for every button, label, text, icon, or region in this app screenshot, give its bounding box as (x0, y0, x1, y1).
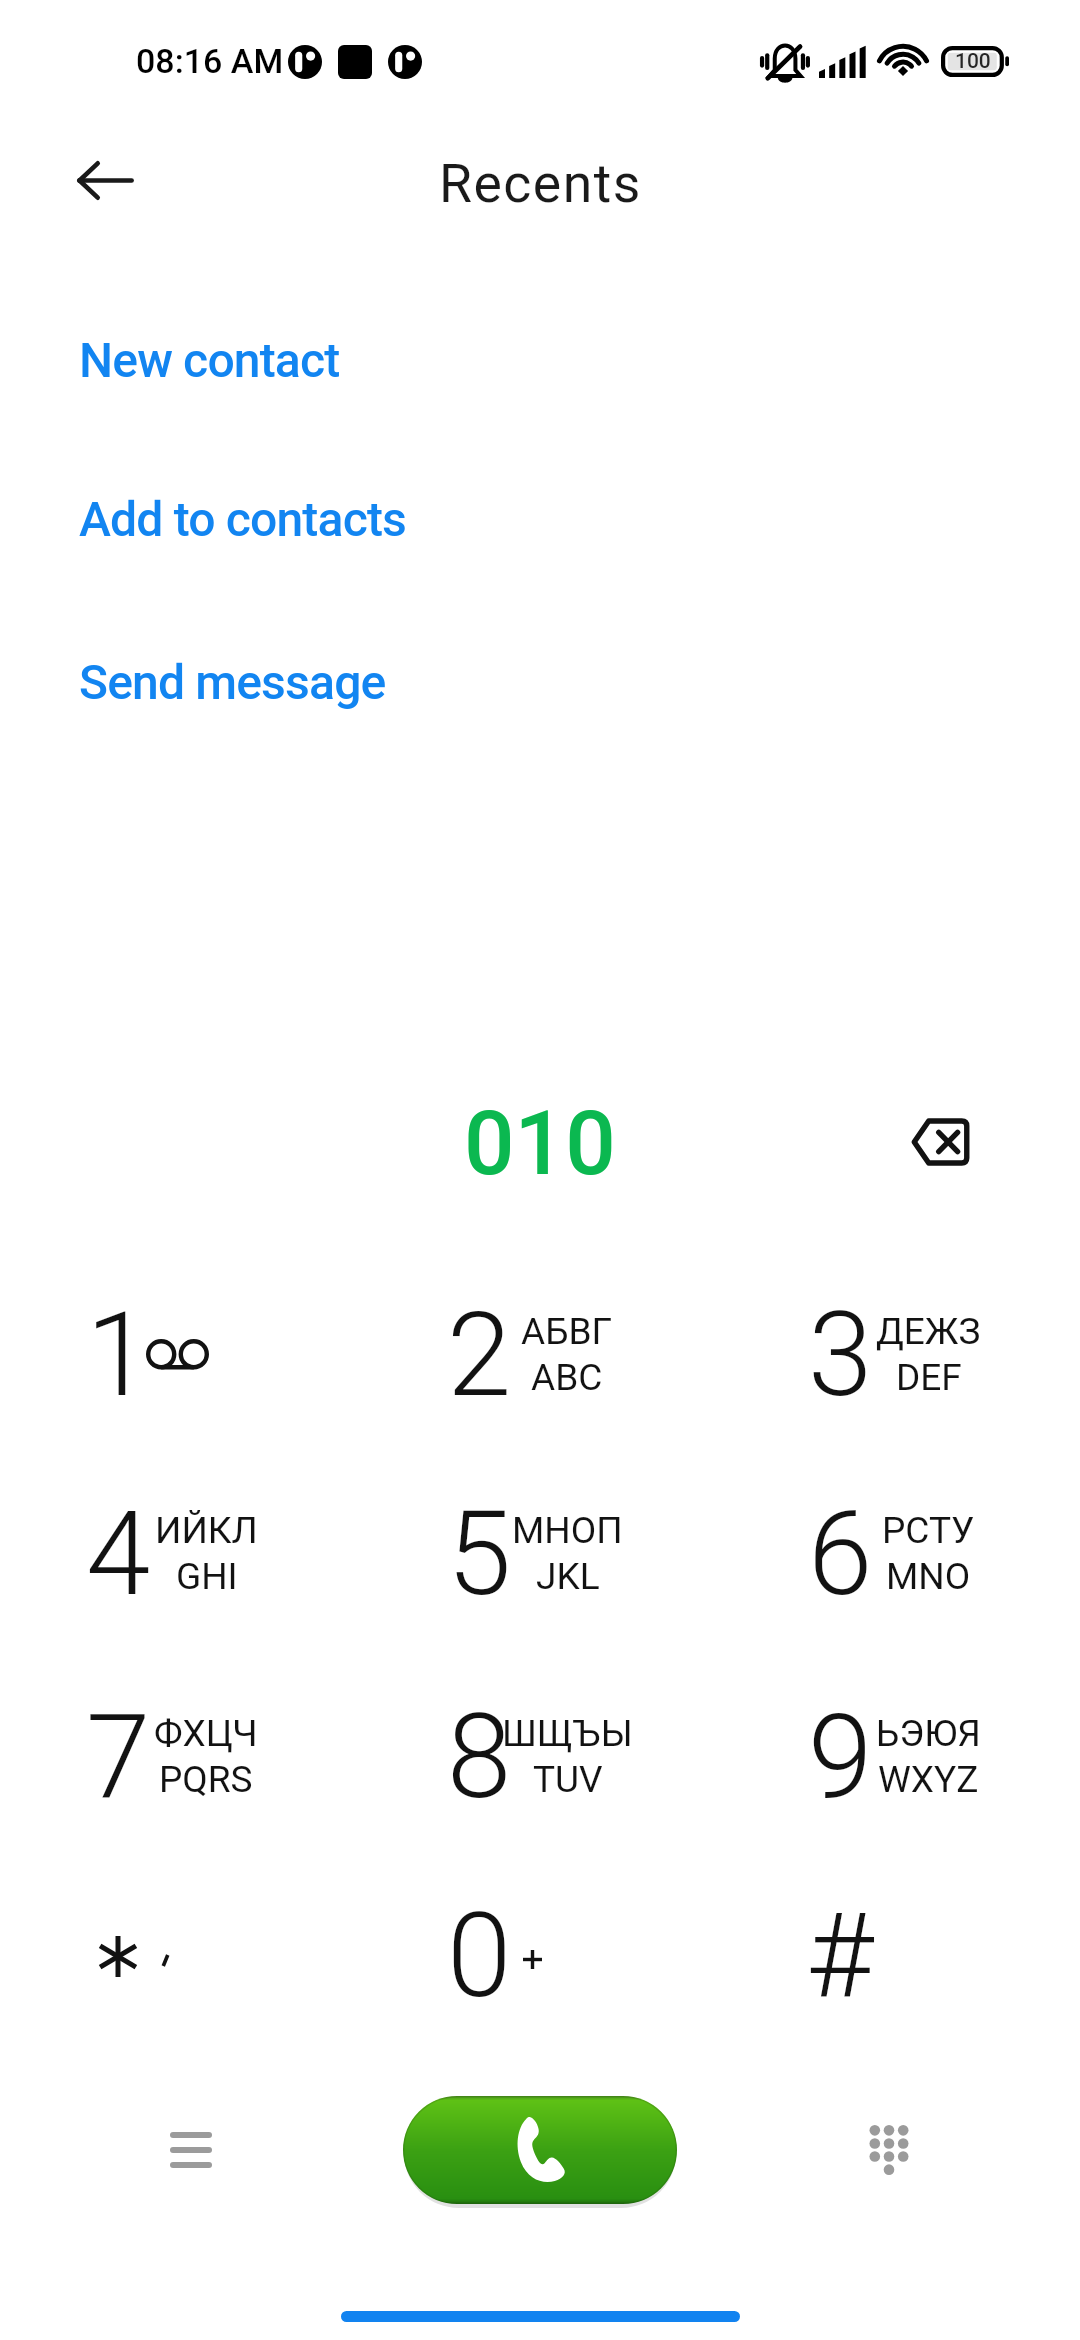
staticText: Recents (439, 152, 642, 215)
button[interactable]: 0 (360, 1855, 720, 2055)
staticText: WXYZ (878, 1758, 979, 1801)
staticText: 0 (447, 1888, 512, 2024)
button[interactable]: 6 (720, 1453, 1080, 1653)
button[interactable]: 4 (0, 1453, 360, 1653)
button[interactable]: Send message (0, 649, 1080, 715)
staticText: 2 (447, 1287, 512, 1423)
staticText: GHI (176, 1555, 238, 1598)
staticText: ФХЦЧ (154, 1712, 258, 1755)
button[interactable]: # (720, 1855, 1080, 2055)
staticText: ШЩЪЫ (502, 1712, 633, 1755)
staticText: 6 (808, 1486, 873, 1622)
staticText: 08:16 AM (136, 41, 284, 81)
staticText: PQRS (159, 1758, 253, 1801)
staticText: Add to contacts (79, 491, 407, 547)
staticText: # (806, 1888, 874, 2024)
button[interactable]: 5 (360, 1453, 720, 1653)
staticText: РСТУ (882, 1509, 975, 1552)
staticText: 010 (464, 1091, 616, 1195)
staticText: Send message (79, 654, 386, 710)
staticText: ДЕЖЗ (876, 1310, 981, 1353)
button[interactable]: Call (403, 2096, 677, 2204)
button[interactable]: Backspace (880, 1082, 1000, 1202)
button[interactable]: Dialpad (829, 2090, 949, 2210)
button[interactable]: 7 (0, 1656, 360, 1856)
button[interactable]: 8 (360, 1656, 720, 1856)
button[interactable]: 9 (720, 1656, 1080, 1856)
staticText: 8 (447, 1689, 512, 1825)
staticText: 3 (808, 1287, 873, 1423)
staticText: 9 (808, 1689, 873, 1825)
staticText: ABC (531, 1356, 603, 1399)
staticText: 7 (86, 1689, 151, 1825)
button[interactable]: Add to contacts (0, 486, 1080, 552)
staticText: МНОП (512, 1509, 623, 1552)
button[interactable] (0, 1855, 360, 2055)
button[interactable]: Back (53, 128, 157, 232)
staticText: АБВГ (521, 1310, 613, 1353)
staticText: MNO (886, 1555, 971, 1598)
staticText: 100 (955, 49, 991, 74)
staticText: 5 (447, 1486, 512, 1622)
button[interactable]: New contact (0, 327, 1080, 393)
button[interactable]: Call log (131, 2090, 251, 2210)
staticText: 1 (86, 1287, 151, 1423)
staticText: DEF (896, 1356, 962, 1399)
button[interactable]: 1 (0, 1254, 360, 1454)
staticText: TUV (533, 1758, 603, 1801)
button[interactable]: 2 (360, 1254, 720, 1454)
staticText: 4 (86, 1486, 151, 1622)
staticText: JKL (536, 1555, 600, 1598)
button[interactable]: 3 (720, 1254, 1080, 1454)
staticText: New contact (79, 332, 340, 388)
staticText: ИЙКЛ (155, 1509, 258, 1552)
staticText: ЬЭЮЯ (876, 1712, 981, 1755)
